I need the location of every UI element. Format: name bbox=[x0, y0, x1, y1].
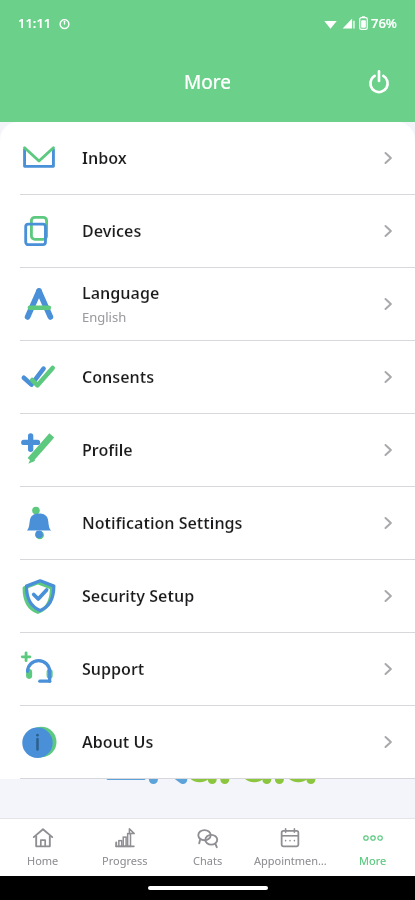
staticText: More bbox=[359, 853, 387, 868]
staticText: About Us bbox=[82, 731, 154, 753]
staticText: Progress bbox=[102, 853, 148, 868]
staticText: Consents bbox=[82, 366, 155, 388]
button[interactable]: Security Setup bbox=[0, 560, 415, 632]
staticText: Inbox bbox=[82, 147, 127, 169]
button[interactable]: Consents bbox=[0, 341, 415, 413]
button[interactable]: Profile bbox=[0, 414, 415, 486]
button[interactable]: About Us bbox=[0, 706, 415, 778]
button[interactable]: Chats bbox=[168, 818, 248, 876]
staticText: 11:11 bbox=[18, 14, 52, 32]
button[interactable]: Notification Settings bbox=[0, 487, 415, 559]
staticText: More bbox=[184, 69, 231, 95]
button[interactable]: Devices bbox=[0, 195, 415, 267]
staticText: 76% bbox=[371, 14, 397, 32]
staticText: Chats bbox=[193, 853, 223, 868]
staticText: English bbox=[82, 308, 127, 326]
staticText: Profile bbox=[82, 439, 133, 461]
button[interactable]: Appointmen… bbox=[250, 818, 330, 876]
staticText: Appointmen… bbox=[254, 853, 327, 868]
staticText: Language bbox=[82, 282, 160, 304]
button[interactable]: Support bbox=[0, 633, 415, 705]
staticText: Notification Settings bbox=[82, 512, 243, 534]
button[interactable]: Inbox bbox=[0, 122, 415, 194]
button[interactable]: More bbox=[333, 818, 413, 876]
staticText: Home bbox=[27, 853, 59, 868]
button[interactable]: Progress bbox=[85, 818, 165, 876]
button[interactable]: Language bbox=[0, 268, 415, 340]
staticText: Support bbox=[82, 658, 145, 680]
button[interactable]: Log out bbox=[359, 62, 399, 102]
staticText: Security Setup bbox=[82, 585, 195, 607]
staticText: Devices bbox=[82, 220, 142, 242]
button[interactable]: Home bbox=[3, 818, 83, 876]
